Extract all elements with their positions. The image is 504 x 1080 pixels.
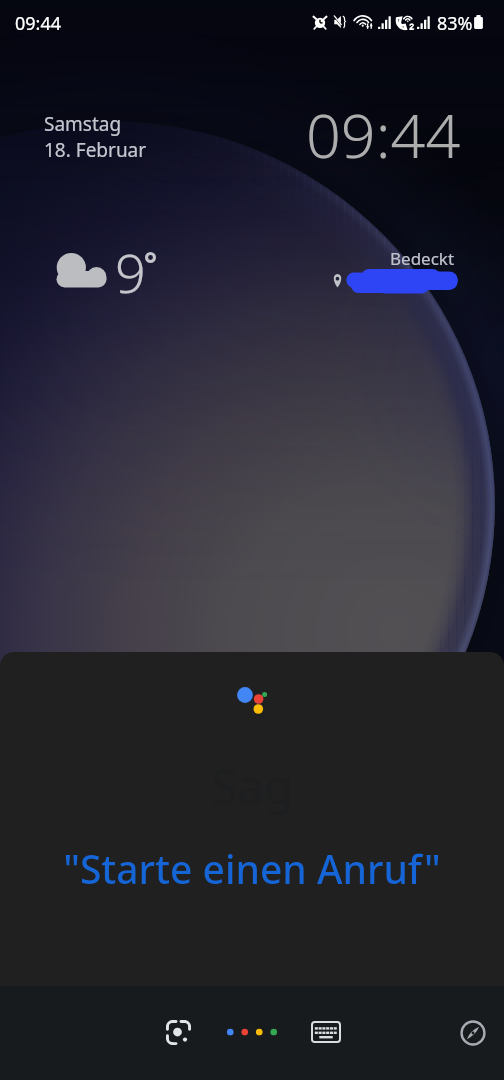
staticText: 9 [115,235,146,309]
staticText: Bedeckt [390,247,455,270]
button[interactable]: Explore [449,1009,496,1056]
staticText: 09:44 [306,93,461,176]
button[interactable]: Voice search [214,1010,290,1054]
staticText: "Starte einen Anruf" [0,842,504,895]
button[interactable]: Google Lens [154,1008,202,1056]
staticText: 09:44 [15,11,62,36]
staticText: 83% [437,11,473,36]
staticText: Samstag [44,111,122,137]
staticText: 18. Februar [44,137,147,163]
button[interactable]: Sag [0,652,504,986]
button[interactable]: Keyboard [302,1008,350,1056]
